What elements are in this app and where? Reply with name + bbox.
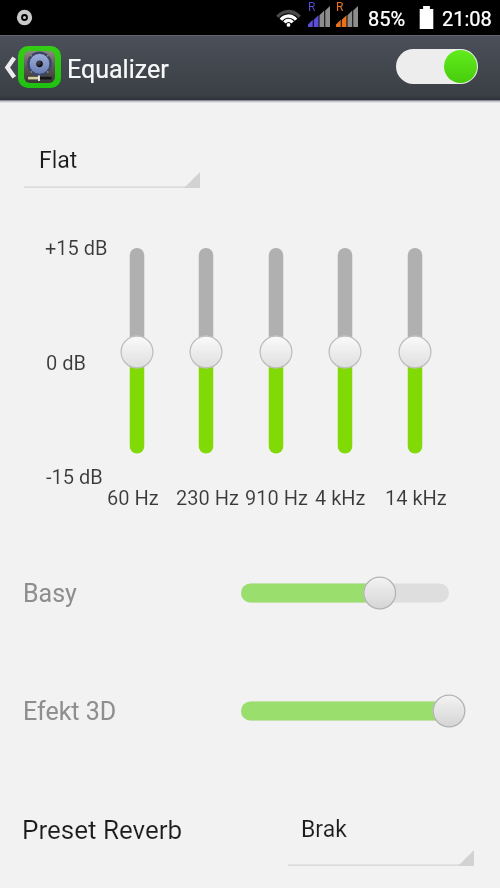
staticText: Flat: [39, 147, 78, 174]
staticText: 0 dB: [46, 351, 86, 374]
staticText: Efekt 3D: [23, 697, 117, 726]
staticText: R: [336, 0, 344, 14]
button[interactable]: Band level: [327, 240, 363, 464]
button[interactable]: Band level: [397, 240, 433, 464]
staticText: 4 kHz: [315, 486, 366, 509]
staticText: 60 Hz: [107, 486, 159, 509]
staticText: 14 kHz: [385, 486, 447, 509]
button[interactable]: Basy: [224, 573, 466, 613]
staticText: R: [308, 0, 316, 14]
staticText: Brak: [301, 816, 347, 843]
button[interactable]: Efekt 3D: [224, 691, 466, 731]
staticText: 910 Hz: [245, 486, 308, 509]
button[interactable]: Brak selector: [288, 818, 474, 866]
staticText: +15 dB: [45, 236, 108, 259]
button[interactable]: Back: [0, 35, 66, 100]
staticText: Equalizer: [67, 55, 169, 84]
staticText: 85%: [368, 7, 406, 30]
button[interactable]: Band level: [119, 240, 155, 464]
button[interactable]: Flat selector: [24, 140, 200, 188]
button[interactable]: Equalizer on/off: [396, 49, 478, 84]
staticText: Preset Reverb: [22, 815, 183, 845]
staticText: 230 Hz: [176, 486, 239, 509]
staticText: Basy: [23, 579, 77, 608]
staticText: -15 dB: [46, 465, 103, 488]
button[interactable]: Band level: [188, 240, 224, 464]
staticText: 21:08: [442, 7, 492, 30]
button[interactable]: Band level: [258, 240, 294, 464]
